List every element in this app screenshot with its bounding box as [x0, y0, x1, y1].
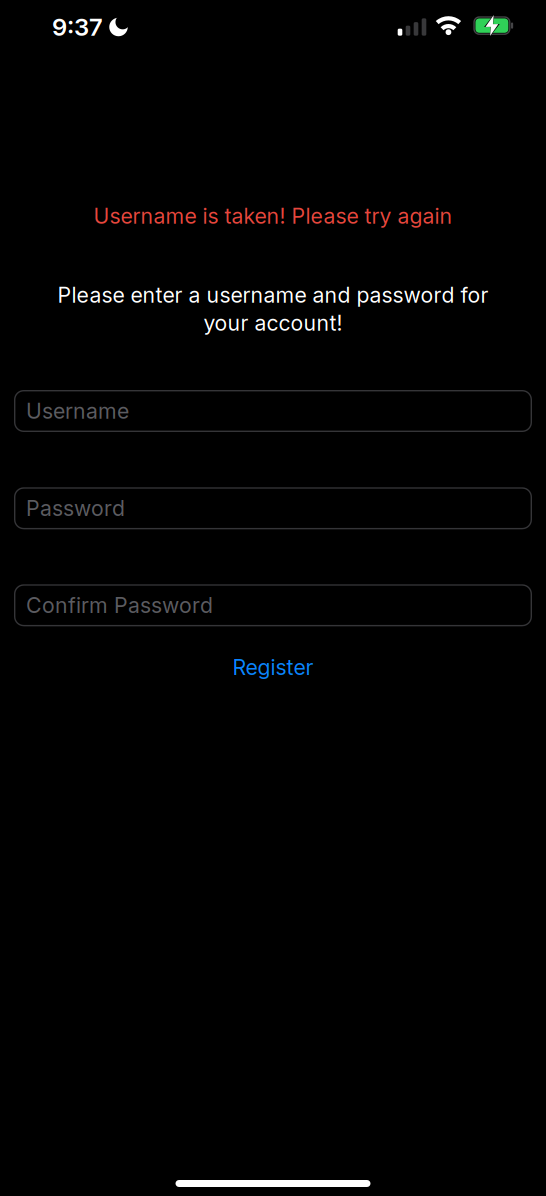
- staticText: Password: [26, 496, 125, 521]
- staticText: Register: [232, 655, 313, 680]
- button[interactable]: Confirm Password: [14, 584, 532, 626]
- staticText: Username: [26, 398, 129, 424]
- staticText: Please enter a username and password for: [57, 282, 488, 308]
- staticText: 9:37: [52, 13, 103, 41]
- button[interactable]: Password: [14, 487, 532, 529]
- staticText: Username is taken! Please try again: [93, 203, 452, 229]
- button[interactable]: Username: [14, 390, 532, 432]
- staticText: your account!: [203, 310, 342, 336]
- button[interactable]: Register: [232, 653, 313, 681]
- staticText: Confirm Password: [26, 593, 213, 618]
